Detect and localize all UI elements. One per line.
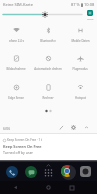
staticText: Flugmodus <box>72 67 88 71</box>
staticText: Keine SIM-Karte <box>3 2 34 7</box>
button[interactable]: Phone <box>6 166 18 178</box>
staticText: Hotspot <box>75 96 86 100</box>
button[interactable]: Recents <box>66 181 78 194</box>
staticText: 87 % <box>71 2 80 7</box>
button[interactable]: Messages <box>25 166 37 178</box>
button[interactable]: Flugmodus <box>64 48 96 70</box>
staticText: Rechner <box>42 96 54 100</box>
button[interactable]: Edit tiles <box>56 121 66 133</box>
button[interactable]: Automatisch drehen <box>32 48 64 70</box>
button[interactable]: Bluetooth ▾ <box>32 20 64 42</box>
staticText: Keep Screen On Free <box>3 144 42 149</box>
button[interactable]: Camera <box>80 166 91 177</box>
button[interactable]: All apps <box>42 163 55 178</box>
staticText: Turned off by user <box>3 150 34 155</box>
button[interactable]: Back <box>9 181 21 194</box>
staticText: ofone 2.4 ▾ <box>9 39 24 43</box>
button[interactable]: Mobile Daten <box>64 20 96 42</box>
button[interactable]: Rechner <box>32 77 64 99</box>
staticText: 6/06 <box>3 126 11 131</box>
button[interactable]: Bildaufnahme <box>0 48 32 70</box>
staticText: Bildaufnahme <box>6 67 26 71</box>
staticText: AUTO <box>87 17 94 20</box>
staticText: Automatisch drehen <box>34 67 62 71</box>
button[interactable]: Settings <box>68 121 78 133</box>
staticText: 10:08 <box>84 2 95 7</box>
button[interactable]: Keep Screen On Free · 1 t <box>0 134 97 160</box>
staticText: Edge Sense <box>8 96 24 100</box>
button[interactable]: Edge Sense <box>0 77 32 99</box>
button[interactable]: Home <box>42 181 54 194</box>
staticText: Bluetooth ▾ <box>40 39 56 43</box>
button[interactable]: Chrome <box>61 165 73 177</box>
staticText: Mobile Daten <box>71 39 90 43</box>
button[interactable]: ofone 2.4 ▾ <box>0 20 32 42</box>
button[interactable]: Hotspot <box>64 77 96 99</box>
staticText: Keep Screen On Free · 1 t <box>7 138 43 142</box>
button[interactable]: Collapse <box>81 121 91 133</box>
button[interactable]: Auto brightness <box>84 10 96 20</box>
